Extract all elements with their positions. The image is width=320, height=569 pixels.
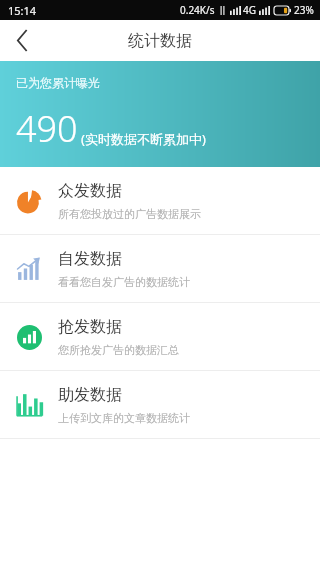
button[interactable]: Back	[0, 20, 44, 61]
staticText: 看看您自发广告的数据统计	[58, 275, 190, 289]
staticText: (实时数据不断累加中)	[81, 130, 206, 148]
button[interactable]: 抢发数据	[0, 303, 320, 370]
staticText: 0.24K/s	[180, 3, 215, 17]
staticText: 统计数据	[128, 31, 192, 51]
staticText: 所有您投放过的广告数据展示	[58, 207, 201, 221]
button[interactable]: 众发数据	[0, 167, 320, 234]
button[interactable]: 助发数据	[0, 371, 320, 438]
staticText: 15:14	[8, 3, 37, 18]
staticText: 您所抢发广告的数据汇总	[58, 343, 179, 357]
staticText: 4G	[243, 3, 256, 17]
staticText: 自发数据	[58, 249, 122, 269]
staticText: 众发数据	[58, 181, 122, 201]
button[interactable]: 自发数据	[0, 235, 320, 302]
staticText: 上传到文库的文章数据统计	[58, 411, 190, 425]
staticText: 23%	[294, 3, 314, 17]
staticText: 490	[16, 104, 78, 153]
staticText: 已为您累计曝光	[16, 75, 100, 90]
staticText: 抢发数据	[58, 317, 122, 337]
staticText: 助发数据	[58, 385, 122, 405]
